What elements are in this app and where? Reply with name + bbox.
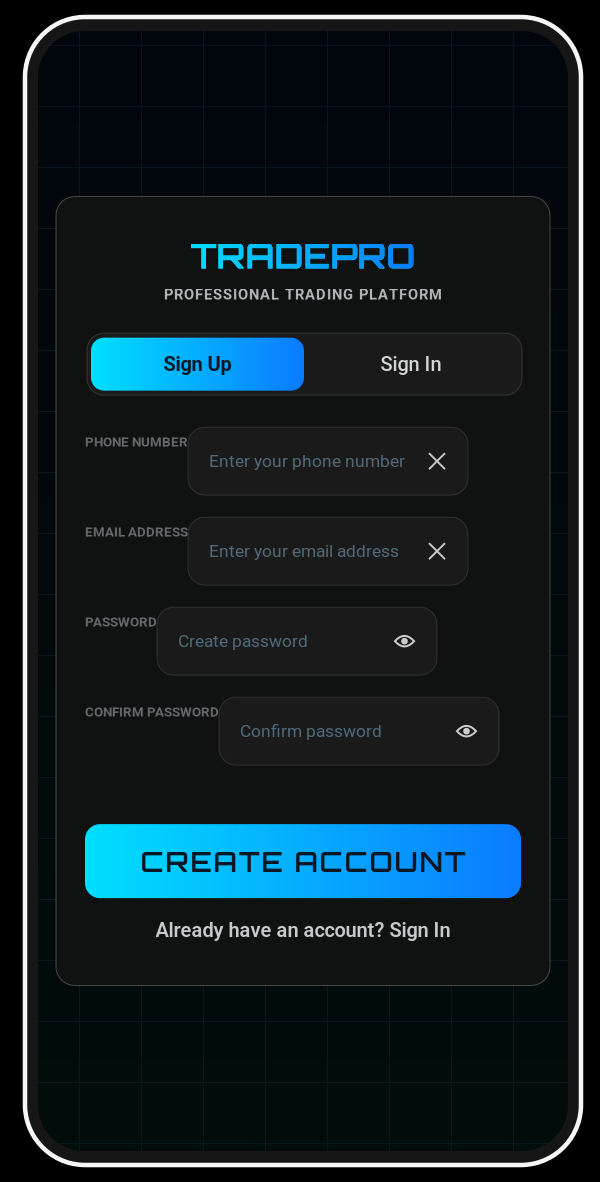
staticText: Enter your email address (209, 541, 399, 561)
button[interactable]: Sign Up (91, 338, 304, 391)
staticText: Sign Up (163, 352, 231, 376)
button[interactable]: Sign In (304, 338, 518, 391)
staticText: Confirm password (240, 721, 382, 741)
staticText: C R E A T E A C C O U N T (140, 844, 465, 879)
staticText: EMAIL ADDRESS (85, 524, 188, 540)
button[interactable]: C R E A T E A C C O U N T (85, 824, 521, 898)
staticText: Already have an account? Sign In (155, 918, 450, 942)
staticText: Enter your phone number (209, 451, 405, 471)
button[interactable]: Already have an account? Sign In (85, 917, 521, 943)
button[interactable]: Confirm password (219, 697, 499, 765)
staticText: TRADEPRO (190, 233, 415, 277)
staticText: PHONE NUMBER (85, 434, 188, 450)
button[interactable]: Enter your email address (188, 517, 468, 585)
staticText: PASSWORD (85, 614, 157, 630)
button[interactable]: Create password (157, 607, 437, 675)
button[interactable]: Enter your phone number (188, 427, 468, 495)
staticText: Create password (178, 631, 308, 651)
staticText: Sign In (380, 352, 441, 376)
staticText: CONFIRM PASSWORD (85, 704, 219, 720)
staticText: P R O F E S S I O N A L T R A D I N G P … (164, 286, 442, 303)
